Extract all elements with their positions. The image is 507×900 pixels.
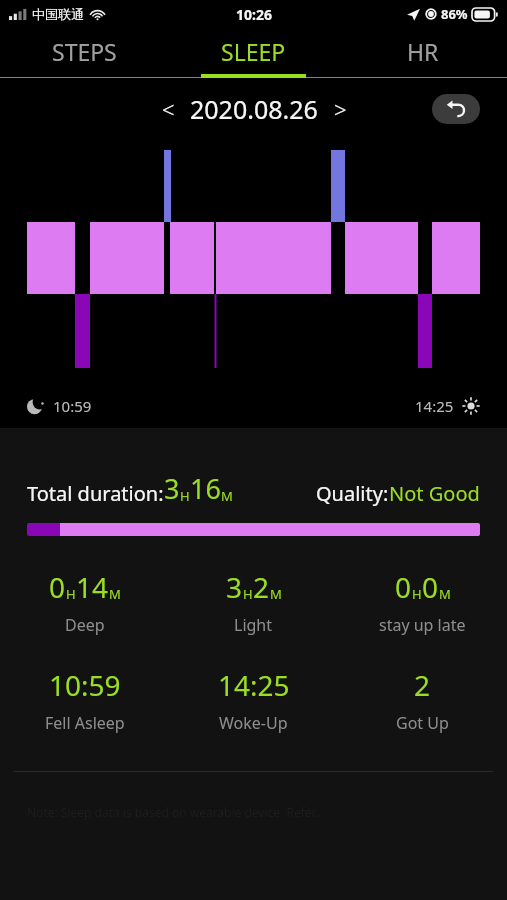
staticText: 14:25 [415, 396, 454, 416]
button[interactable]: 0 [0, 568, 169, 636]
staticText: M [270, 585, 282, 603]
staticText: H [243, 585, 253, 603]
staticText: 10:59 [53, 396, 92, 416]
button[interactable]: STEPS [0, 28, 169, 74]
staticText: Got Up [396, 712, 449, 734]
staticText: M [221, 487, 233, 505]
button[interactable]: Refresh [432, 94, 480, 124]
staticText: 14 [76, 568, 109, 606]
staticText: 0 [422, 568, 439, 606]
staticText: 0 [395, 568, 412, 606]
button[interactable]: SLEEP [169, 28, 338, 74]
button[interactable]: 2 [338, 666, 507, 734]
button[interactable]: 10:59 [0, 666, 169, 734]
staticText: SLEEP [221, 36, 286, 67]
staticText: 10:59 [49, 666, 121, 704]
button[interactable]: Previous day [150, 91, 186, 127]
staticText: H [180, 487, 190, 505]
staticText: 3 [164, 470, 180, 507]
staticText: < [162, 94, 175, 124]
staticText: > [334, 94, 347, 124]
staticText: 中国联通 [32, 6, 84, 22]
staticText: Woke-Up [219, 712, 288, 734]
staticText: Not Good [389, 480, 480, 507]
staticText: Total duration: [27, 480, 164, 507]
button[interactable]: Next day [322, 91, 358, 127]
staticText: Fell Asleep [45, 712, 125, 734]
staticText: 2 [414, 666, 431, 704]
button[interactable]: 0 [338, 568, 507, 636]
staticText: STEPS [52, 36, 117, 67]
button[interactable]: HR [338, 28, 507, 74]
staticText: 0 [49, 568, 66, 606]
staticText: 2020.08.26 [190, 92, 318, 126]
staticText: H [66, 585, 76, 603]
staticText: 86% [441, 5, 468, 23]
staticText: M [439, 585, 451, 603]
staticText: Quality: [316, 480, 389, 507]
button[interactable]: 14:25 [169, 666, 338, 734]
staticText: M [109, 585, 121, 603]
staticText: 16 [190, 470, 221, 507]
staticText: 14:25 [218, 666, 290, 704]
staticText: stay up late [379, 614, 466, 636]
staticText: 2 [253, 568, 270, 606]
staticText: Light [234, 614, 273, 636]
staticText: 10:26 [236, 5, 272, 24]
staticText: H [412, 585, 422, 603]
button[interactable]: 3 [169, 568, 338, 636]
staticText: HR [407, 36, 439, 67]
staticText: Deep [65, 614, 105, 636]
staticText: 3 [226, 568, 243, 606]
